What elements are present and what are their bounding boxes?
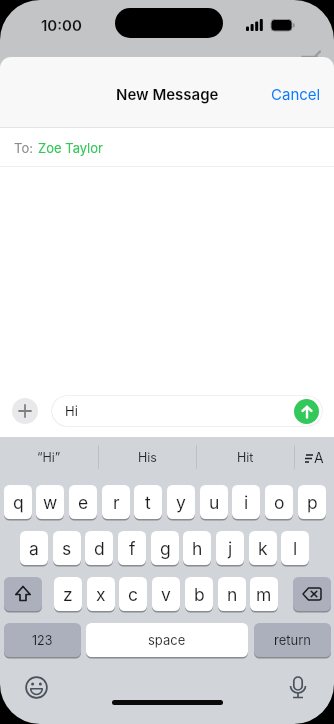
staticText: o xyxy=(274,492,285,513)
button[interactable]: space xyxy=(86,623,248,657)
staticText: g xyxy=(160,538,171,559)
button[interactable]: k xyxy=(249,531,277,565)
staticText: k xyxy=(258,538,268,559)
button[interactable]: h xyxy=(183,531,211,565)
staticText: v xyxy=(161,584,171,605)
staticText: i xyxy=(244,492,249,513)
button[interactable]: Cancel xyxy=(271,83,321,101)
staticText: Hi xyxy=(65,403,78,419)
button[interactable] xyxy=(293,577,331,611)
staticText: A xyxy=(314,449,324,466)
staticText: x xyxy=(96,584,106,605)
button[interactable]: r xyxy=(102,485,130,519)
button[interactable]: o xyxy=(265,485,293,519)
button[interactable]: j xyxy=(216,531,244,565)
staticText: n xyxy=(227,584,238,605)
button[interactable]: b xyxy=(185,577,213,611)
button[interactable]: return xyxy=(254,623,331,657)
staticText: New Message xyxy=(116,85,219,103)
staticText: u xyxy=(209,492,220,513)
button[interactable]: l xyxy=(281,531,309,565)
button[interactable]: t xyxy=(134,485,162,519)
staticText: w xyxy=(43,492,58,513)
staticText: q xyxy=(13,492,24,513)
staticText: 123 xyxy=(32,633,53,648)
staticText: c xyxy=(128,584,138,605)
staticText: h xyxy=(192,538,203,559)
staticText: f xyxy=(129,538,136,559)
staticText: y xyxy=(176,492,186,513)
button[interactable]: f xyxy=(118,531,146,565)
staticText: To: xyxy=(14,140,33,156)
button[interactable]: m xyxy=(250,577,278,611)
staticText: Cancel xyxy=(271,85,321,103)
staticText: t xyxy=(145,492,151,513)
button[interactable]: p xyxy=(298,485,326,519)
staticText: r xyxy=(113,492,120,513)
button[interactable]: v xyxy=(152,577,180,611)
staticText: return xyxy=(274,632,311,648)
staticText: e xyxy=(78,492,89,513)
button[interactable]: u xyxy=(200,485,228,519)
button[interactable]: s xyxy=(53,531,81,565)
button[interactable] xyxy=(12,398,38,424)
staticText: d xyxy=(94,538,105,559)
staticText: His xyxy=(138,450,157,465)
staticText: space xyxy=(148,632,186,648)
button[interactable]: a xyxy=(20,531,48,565)
button[interactable]: q xyxy=(4,485,32,519)
button[interactable]: d xyxy=(85,531,113,565)
staticText: m xyxy=(256,584,272,605)
staticText: s xyxy=(62,538,72,559)
button[interactable] xyxy=(277,667,318,708)
button[interactable]: Hi xyxy=(52,396,322,426)
button[interactable] xyxy=(294,399,319,424)
button[interactable]: Hit xyxy=(196,437,294,477)
button[interactable]: To: xyxy=(0,128,334,167)
button[interactable]: 123 xyxy=(4,623,81,657)
button[interactable]: c xyxy=(119,577,147,611)
button[interactable]: “Hi” xyxy=(0,437,98,477)
staticText: “Hi” xyxy=(37,450,61,465)
button[interactable]: w xyxy=(36,485,64,519)
button[interactable]: A xyxy=(294,437,334,477)
button[interactable] xyxy=(4,577,42,611)
button[interactable]: g xyxy=(151,531,179,565)
staticText: z xyxy=(63,584,73,605)
button[interactable]: x xyxy=(87,577,115,611)
staticText: a xyxy=(29,538,39,559)
staticText: b xyxy=(194,584,205,605)
staticText: Zoe Taylor xyxy=(38,140,103,156)
button[interactable]: i xyxy=(232,485,260,519)
button[interactable]: y xyxy=(167,485,195,519)
button[interactable] xyxy=(16,667,57,708)
staticText: l xyxy=(293,538,298,559)
button[interactable]: e xyxy=(69,485,97,519)
staticText: p xyxy=(307,492,318,513)
staticText: Hit xyxy=(237,450,254,465)
button[interactable]: His xyxy=(98,437,196,477)
staticText: 10:00 xyxy=(41,16,82,34)
button[interactable]: n xyxy=(218,577,246,611)
button[interactable]: z xyxy=(54,577,82,611)
staticText: j xyxy=(228,538,233,559)
